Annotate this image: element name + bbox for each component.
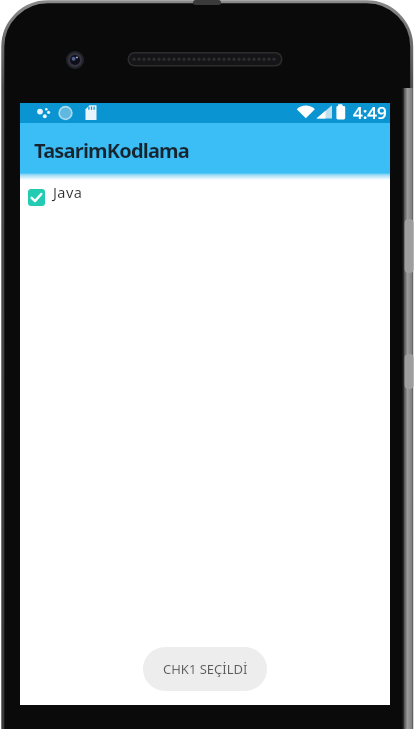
- staticText: 4:49: [353, 101, 387, 121]
- staticText: Java: [53, 182, 83, 202]
- button[interactable]: Java: [28, 187, 83, 207]
- staticText: CHK1 SEÇİLDİ: [163, 660, 248, 678]
- staticText: TasarimKodlama: [34, 137, 189, 164]
- button[interactable]: CHK1 SEÇİLDİ: [143, 647, 267, 691]
- button[interactable]: TasarimKodlama: [20, 123, 390, 173]
